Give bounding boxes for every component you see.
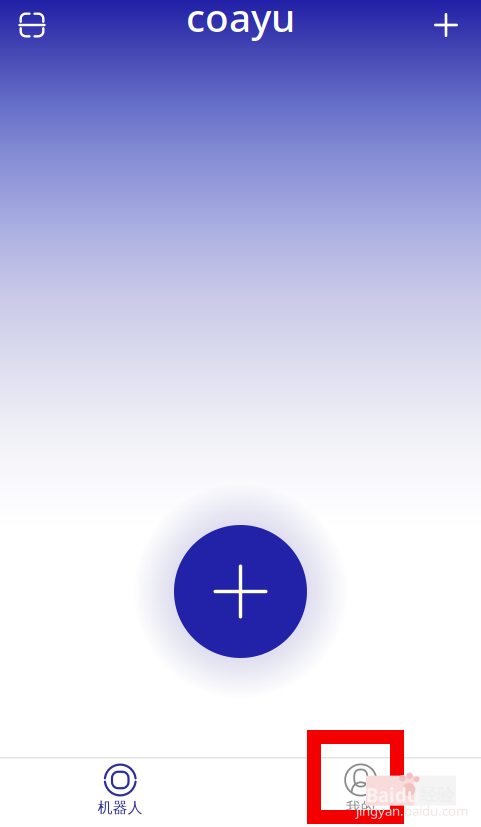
staticText: jingyan.baidu.com (356, 802, 468, 819)
button[interactable]: Add robot (174, 525, 307, 658)
button[interactable]: 机器人 (0, 758, 240, 827)
staticText: 机器人 (98, 798, 143, 816)
staticText: coayu (186, 0, 295, 43)
button[interactable]: Scan (10, 3, 54, 47)
button[interactable]: 我的 (240, 758, 481, 827)
staticText: Baidu (366, 783, 419, 807)
staticText: 我的 (346, 798, 376, 816)
button[interactable]: Add device (424, 3, 468, 47)
